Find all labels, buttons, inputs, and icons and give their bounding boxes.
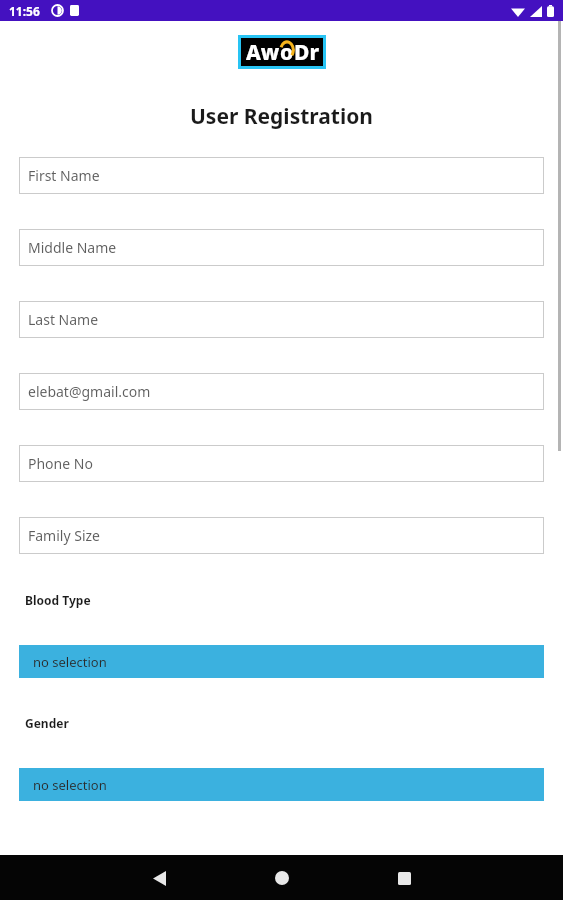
button[interactable]: First Name [19,157,544,194]
staticText: Dr [294,38,319,66]
button[interactable]: Last Name [19,301,544,338]
staticText: no selection [33,653,107,671]
staticText: Blood Type [25,592,91,608]
staticText: Last Name [28,310,99,329]
staticText: Gender [25,715,69,731]
staticText: Family Size [28,526,100,545]
staticText: Aw [246,38,280,66]
staticText: o [280,38,294,66]
button[interactable]: no selection [19,645,544,678]
button[interactable]: Home [265,861,299,895]
staticText: First Name [28,166,100,185]
staticText: no selection [33,776,107,794]
button[interactable]: Middle Name [19,229,544,266]
button[interactable]: Phone No [19,445,544,482]
button[interactable]: elebat@gmail.com [19,373,544,410]
staticText: Phone No [28,454,93,473]
staticText: User Registration [0,102,563,131]
button[interactable]: Back [142,861,176,895]
staticText: Middle Name [28,238,117,257]
button[interactable]: Family Size [19,517,544,554]
staticText: elebat@gmail.com [28,382,151,401]
button[interactable]: no selection [19,768,544,801]
button[interactable]: Recent apps [387,861,421,895]
staticText: 11:56 [9,3,40,19]
